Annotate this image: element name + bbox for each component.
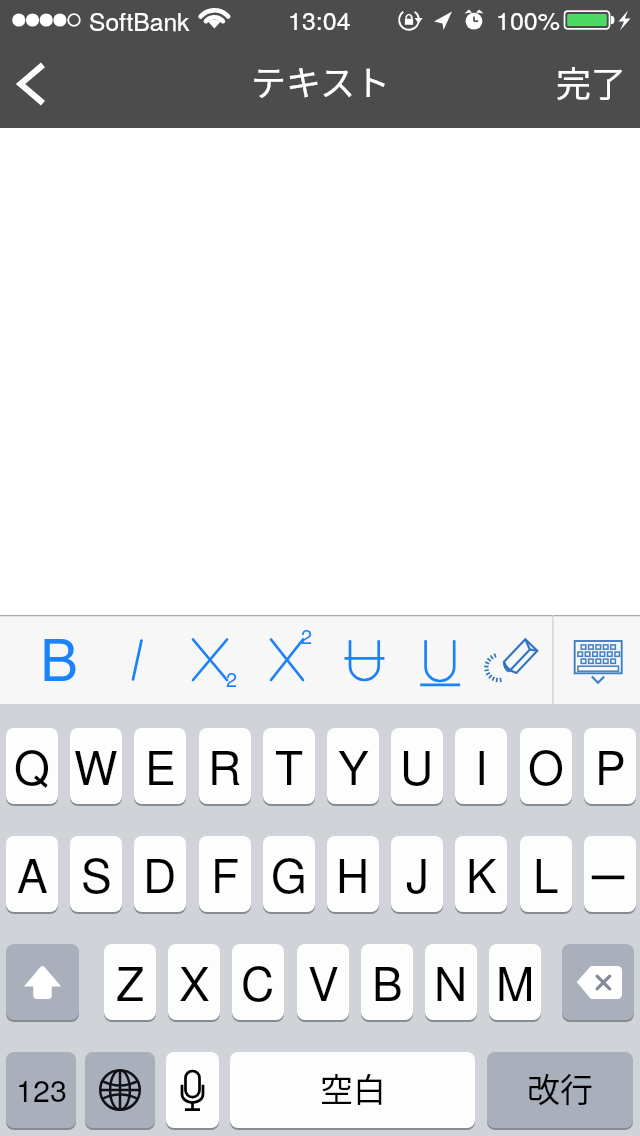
button[interactable]: L: [520, 836, 572, 912]
staticText: U: [400, 732, 434, 798]
button[interactable]: N: [425, 944, 477, 1020]
button[interactable]: V: [297, 944, 349, 1020]
staticText: Z: [116, 948, 145, 1014]
button[interactable]: G: [263, 836, 315, 912]
button[interactable]: 完了: [556, 40, 627, 128]
staticText: B: [372, 948, 403, 1014]
staticText: 2: [301, 621, 313, 650]
staticText: 123: [16, 1067, 67, 1111]
button[interactable]: Y: [327, 728, 379, 804]
staticText: E: [145, 732, 176, 798]
button[interactable]: Switch keyboard: [85, 1052, 155, 1128]
staticText: B: [40, 616, 79, 698]
staticText: L: [533, 840, 559, 906]
staticText: 2: [226, 664, 238, 693]
button[interactable]: Shift: [6, 944, 79, 1020]
button[interactable]: E: [134, 728, 186, 804]
button[interactable]: U: [391, 728, 443, 804]
staticText: Q: [14, 732, 50, 798]
staticText: X: [179, 948, 210, 1014]
button[interactable]: B: [361, 944, 413, 1020]
staticText: D: [143, 840, 177, 906]
staticText: N: [434, 948, 468, 1014]
button[interactable]: Backspace: [562, 944, 634, 1020]
button[interactable]: A: [6, 836, 58, 912]
button[interactable]: 空白: [230, 1052, 475, 1128]
button[interactable]: K: [455, 836, 507, 912]
button[interactable]: Back: [0, 40, 72, 128]
staticText: W: [74, 732, 118, 798]
button[interactable]: I: [455, 728, 507, 804]
staticText: H: [336, 840, 370, 906]
staticText: A: [17, 840, 48, 906]
staticText: M: [496, 948, 535, 1014]
staticText: T: [275, 732, 304, 798]
button[interactable]: Dictate: [166, 1052, 219, 1128]
staticText: R: [208, 732, 242, 798]
button[interactable]: Z: [104, 944, 156, 1020]
button[interactable]: H: [327, 836, 379, 912]
staticText: K: [466, 840, 497, 906]
button[interactable]: W: [70, 728, 122, 804]
staticText: 100%: [496, 1, 560, 37]
staticText: S: [81, 840, 112, 906]
button[interactable]: Q: [6, 728, 58, 804]
staticText: 13:04: [288, 1, 351, 37]
staticText: 完了: [556, 56, 627, 107]
staticText: Y: [338, 732, 369, 798]
button[interactable]: S: [70, 836, 122, 912]
staticText: I: [475, 732, 488, 798]
button[interactable]: F: [199, 836, 251, 912]
button[interactable]: M: [489, 944, 541, 1020]
staticText: SoftBank: [89, 3, 190, 38]
button[interactable]: 123: [6, 1052, 76, 1128]
button[interactable]: C: [232, 944, 284, 1020]
button[interactable]: Long vowel mark: [584, 836, 636, 912]
button[interactable]: R: [199, 728, 251, 804]
button[interactable]: P: [584, 728, 636, 804]
staticText: P: [595, 732, 626, 798]
staticText: G: [271, 840, 307, 906]
staticText: F: [211, 840, 240, 906]
button[interactable]: X: [168, 944, 220, 1020]
button[interactable]: D: [134, 836, 186, 912]
button[interactable]: [20, 615, 568, 704]
button[interactable]: O: [520, 728, 572, 804]
button[interactable]: J: [391, 836, 443, 912]
staticText: C: [241, 948, 275, 1014]
button[interactable]: 改行: [487, 1052, 633, 1128]
button[interactable]: T: [263, 728, 315, 804]
staticText: 空白: [320, 1064, 386, 1112]
staticText: V: [308, 948, 339, 1014]
staticText: J: [406, 840, 429, 906]
staticText: テキスト: [251, 55, 390, 106]
staticText: 改行: [527, 1064, 593, 1112]
staticText: O: [528, 732, 564, 798]
